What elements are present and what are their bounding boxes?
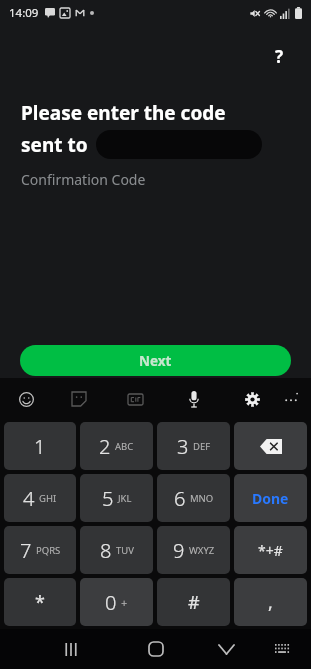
staticText: # [188,590,200,615]
staticText: *+# [258,541,283,560]
staticText: MNO [190,492,214,505]
button[interactable]: GIF [122,386,148,412]
button[interactable]: 9 [157,526,230,574]
button[interactable]: 3 [157,422,230,470]
button[interactable]: Help [263,40,295,72]
staticText: + [121,595,128,610]
staticText: Confirmation Code [21,170,146,189]
staticText: WXYZ [189,544,215,557]
button[interactable]: # [157,578,230,626]
button[interactable]: More options [278,386,304,412]
staticText: 2 [99,433,111,460]
staticText: 9 [173,537,185,564]
button[interactable]: Switch keyboard [267,634,297,664]
staticText: 8 [100,537,112,564]
button[interactable]: 0 [80,578,153,626]
staticText: JKL [118,492,132,505]
staticText: , [268,590,273,615]
staticText: sent to [21,132,88,158]
button[interactable]: Home [141,634,171,664]
button[interactable]: , [234,578,307,626]
button[interactable]: Emoji [13,386,39,412]
button[interactable]: 5 [80,474,153,522]
staticText: ABC [115,440,134,453]
staticText: ? [275,45,284,68]
button[interactable]: 1 [4,422,76,470]
button[interactable]: Settings [239,386,265,412]
button[interactable]: 6 [157,474,230,522]
button[interactable]: Voice input [181,386,207,412]
staticText: 0 [105,589,117,616]
staticText: TUV [116,544,134,557]
staticText: 1 [34,433,46,460]
staticText: Done [252,489,289,508]
staticText: 4 [23,485,35,512]
button[interactable]: Next [20,345,291,376]
button[interactable]: 8 [80,526,153,574]
button[interactable]: Recent apps [56,634,86,664]
button[interactable]: Stickers [66,386,92,412]
button[interactable]: Backspace [234,422,307,470]
staticText: 14:09 [9,5,39,21]
button[interactable]: 4 [4,474,76,522]
staticText: * [35,590,45,615]
staticText: 5 [102,485,114,512]
button[interactable]: Done [234,474,307,522]
staticText: Next [139,352,172,370]
staticText: 7 [20,537,32,564]
staticText: DEF [193,440,211,453]
staticText: Please enter the code [21,100,226,126]
staticText: 3 [177,433,189,460]
button[interactable]: 7 [4,526,76,574]
staticText: PQRS [36,544,61,557]
staticText: 6 [174,485,186,512]
button[interactable]: * [4,578,76,626]
button[interactable]: Hide keyboard [211,634,241,664]
button[interactable]: *+# [234,526,307,574]
button[interactable]: 2 [80,422,153,470]
staticText: GHI [39,492,57,505]
